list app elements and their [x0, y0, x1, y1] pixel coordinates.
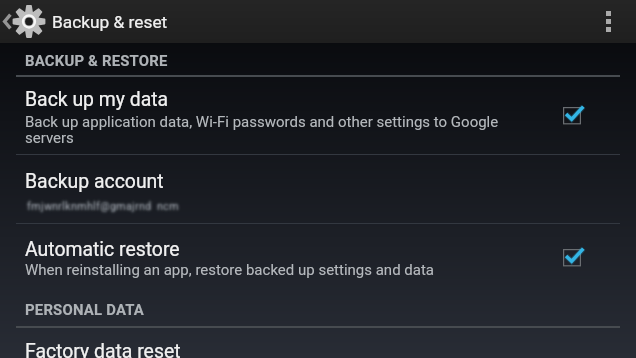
- staticText: Automatic restore: [25, 238, 180, 261]
- button[interactable]: Automatic restore: [0, 224, 636, 288]
- button[interactable]: Back up my data: [0, 76, 636, 154]
- staticText: Backup account: [25, 170, 164, 193]
- button[interactable]: More options: [592, 0, 624, 43]
- staticText: PERSONAL DATA: [25, 301, 145, 318]
- button[interactable]: Backup account: [0, 155, 636, 223]
- button[interactable]: Factory data reset: [0, 327, 636, 358]
- staticText: servers: [25, 129, 74, 147]
- button[interactable]: Navigate up: [0, 0, 48, 43]
- staticText: Factory data reset: [25, 340, 181, 358]
- staticText: When reinstalling an app, restore backed…: [25, 261, 435, 279]
- staticText: Back up my data: [25, 88, 169, 111]
- staticText: BACKUP & RESTORE: [25, 52, 168, 69]
- staticText: Back up application data, Wi-Fi password…: [25, 113, 499, 131]
- staticText: Backup & reset: [52, 12, 168, 32]
